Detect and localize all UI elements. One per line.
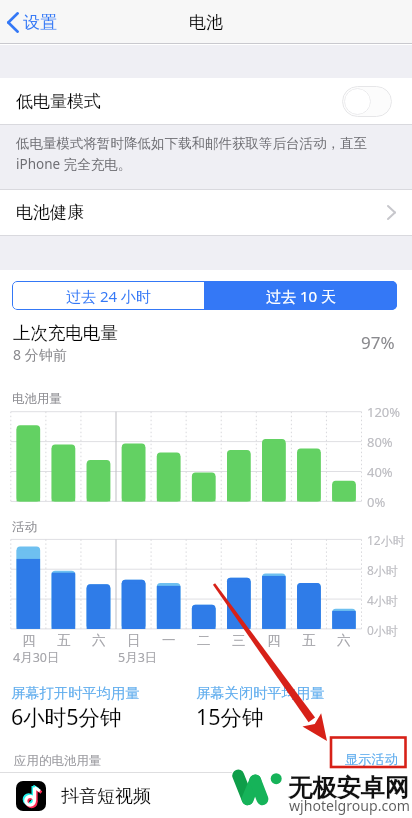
staticText: 12小时 [367,532,405,548]
staticText: 五 [302,632,316,649]
staticText: 显示活动 [345,751,399,768]
staticText: 无极安卓网 [288,773,409,803]
staticText: 电池用量 [12,391,62,407]
button[interactable]: 过去 24 小时 [12,281,204,310]
button[interactable]: 低电量模式 [0,78,412,125]
staticText: 6小时5分钟 [11,702,122,731]
staticText: 设置 [23,12,57,33]
staticText: 三 [232,632,246,649]
staticText: 过去 24 小时 [66,286,151,306]
staticText: 15分钟 [196,702,264,731]
staticText: 0小时 [367,622,398,638]
staticText: 五 [57,632,71,649]
staticText: wjhotelgroup.com [289,796,410,815]
staticText: 80% [367,433,393,451]
staticText: 8 分钟前 [13,345,67,364]
button[interactable]: 电池健康 [0,190,412,235]
staticText: 屏幕打开时平均用量 [11,684,140,702]
staticText: 40% [367,463,393,481]
staticText: 应用的电池用量 [14,753,102,769]
button[interactable]: 低电量模式开关 [342,86,392,117]
staticText: 0% [367,493,386,511]
staticText: 4月30日 [13,649,60,666]
button[interactable]: 设置 [7,12,57,33]
staticText: 5月3日 [118,649,158,666]
staticText: 上次充电电量 [13,322,118,344]
staticText: 抖音短视频 [61,785,151,808]
staticText: 四 [267,632,281,649]
staticText: 97% [361,331,395,354]
staticText: 日 [127,632,141,649]
staticText: 120% [367,403,401,421]
staticText: 过去 10 天 [266,286,336,306]
staticText: 二 [197,632,211,649]
staticText: 屏幕关闭时平均用量 [196,684,325,702]
staticText: 六 [92,632,106,649]
staticText: 四 [22,632,36,649]
staticText: 一 [162,632,176,649]
staticText: 六 [337,632,351,649]
staticText: 电池 [189,12,223,33]
staticText: 低电量模式将暂时降低如下载和邮件获取等后台活动，直至 iPhone 完全充电。 [16,135,367,173]
staticText: 4小时 [367,592,398,608]
staticText: 活动 [12,519,37,535]
staticText: 8小时 [367,562,398,578]
button[interactable]: 显示活动 [345,751,399,768]
staticText: 低电量模式 [16,91,101,112]
staticText: 电池健康 [16,202,84,223]
button[interactable]: 过去 10 天 [204,281,397,310]
